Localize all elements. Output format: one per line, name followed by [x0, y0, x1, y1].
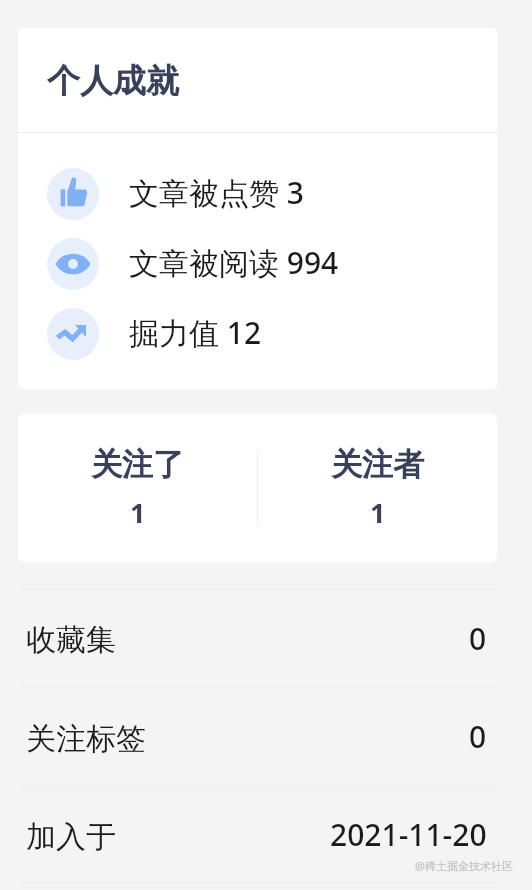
staticText: 收藏集	[26, 621, 116, 659]
staticText: 关注标签	[26, 720, 146, 758]
staticText: 0	[469, 716, 487, 757]
staticText: 文章被阅读 994	[129, 242, 339, 283]
staticText: 关注了	[91, 445, 184, 484]
staticText: 1	[370, 494, 386, 531]
button[interactable]: 关注标签	[0, 688, 532, 785]
staticText: 个人成就	[47, 60, 179, 102]
staticText: 文章被点赞 3	[129, 172, 304, 213]
staticText: 加入于	[26, 818, 116, 856]
staticText: 0	[469, 618, 487, 659]
staticText: 关注者	[331, 445, 424, 484]
staticText: 2021-11-20	[330, 814, 487, 855]
staticText: 1	[130, 494, 146, 531]
button[interactable]: 关注了	[18, 445, 257, 531]
button[interactable]: 加入于	[0, 786, 532, 883]
staticText: @稀土掘金技术社区	[415, 858, 513, 873]
staticText: 掘力值 12	[129, 312, 262, 353]
button[interactable]: 关注者	[258, 445, 497, 531]
button[interactable]: 收藏集	[0, 589, 532, 687]
